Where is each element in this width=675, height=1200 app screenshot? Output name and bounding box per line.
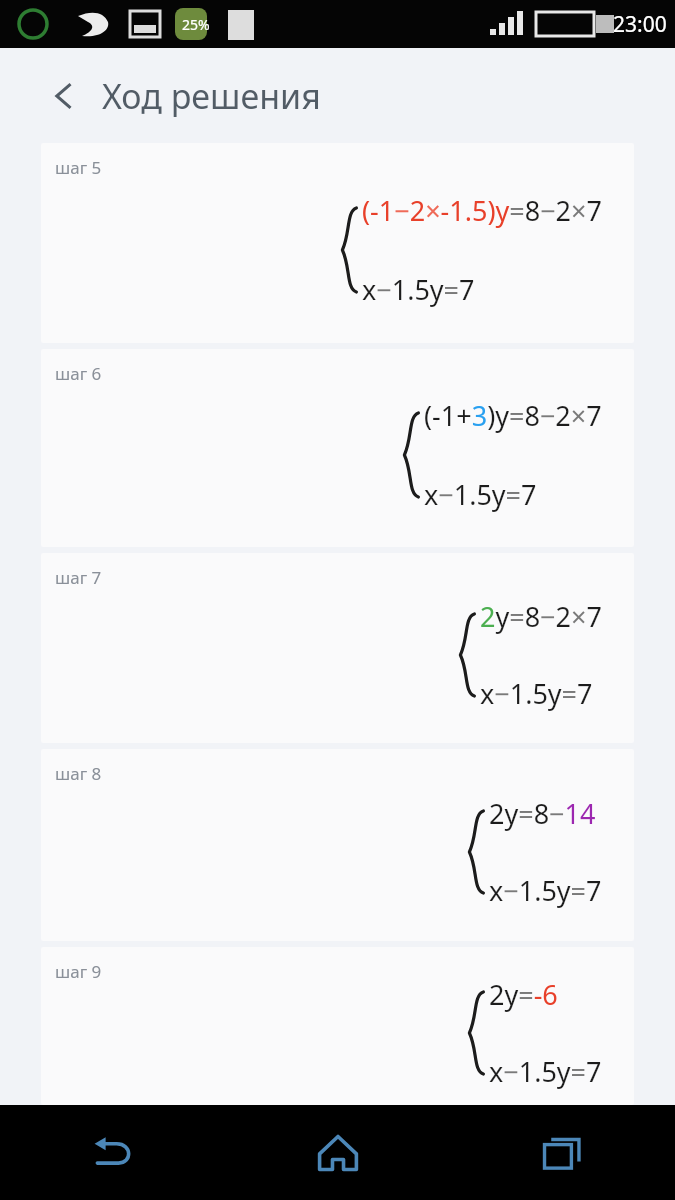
button[interactable]: Home <box>225 1105 450 1200</box>
staticText: шаг 6 <box>55 362 102 385</box>
staticText: шаг 7 <box>55 566 102 589</box>
staticText: x−1.5y=7 <box>489 1053 602 1090</box>
button[interactable]: Recent apps <box>450 1105 675 1200</box>
button[interactable]: шаг 6 <box>41 349 634 547</box>
staticText: 2y=-6 <box>489 976 558 1013</box>
button[interactable]: Back <box>0 1105 225 1200</box>
staticText: шаг 5 <box>55 156 102 179</box>
staticText: x−1.5y=7 <box>362 271 475 308</box>
staticText: 2y=8−2×7 <box>480 598 602 635</box>
button[interactable]: шаг 5 <box>41 143 634 343</box>
button[interactable]: шаг 9 <box>41 947 634 1105</box>
staticText: x−1.5y=7 <box>424 476 537 513</box>
staticText: (-1−2×-1.5)y=8−2×7 <box>362 192 602 229</box>
staticText: x−1.5y=7 <box>480 675 593 712</box>
staticText: (-1+3)y=8−2×7 <box>424 397 602 434</box>
staticText: Ход решения <box>102 73 321 119</box>
staticText: 25% <box>182 15 210 34</box>
staticText: 2y=8−14 <box>489 795 596 832</box>
staticText: шаг 8 <box>55 762 102 785</box>
button[interactable]: шаг 8 <box>41 749 634 941</box>
staticText: шаг 9 <box>55 960 102 983</box>
button[interactable]: шаг 7 <box>41 553 634 743</box>
button[interactable]: Back <box>42 74 86 118</box>
staticText: x−1.5y=7 <box>489 872 602 909</box>
staticText: 23:00 <box>613 10 667 39</box>
